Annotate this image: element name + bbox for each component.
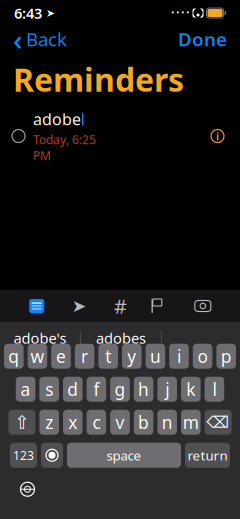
staticText: n <box>162 411 173 434</box>
staticText: u <box>150 345 161 368</box>
button[interactable]: ‹ <box>3 15 77 62</box>
staticText: Back <box>26 27 67 51</box>
button[interactable]: y <box>122 344 142 369</box>
staticText: w <box>30 345 44 368</box>
staticText: t <box>105 345 111 368</box>
staticText: m <box>183 411 199 434</box>
staticText: b <box>138 411 149 434</box>
button[interactable]: Key <box>10 443 37 468</box>
button[interactable]: space <box>67 443 181 468</box>
button[interactable]: adobes <box>81 322 161 354</box>
staticText: ⌫ <box>207 413 230 431</box>
staticText: i <box>216 129 219 143</box>
staticText: x <box>68 411 77 434</box>
button[interactable]: l <box>205 377 224 402</box>
button[interactable]: z <box>39 410 59 435</box>
staticText: ⇧ <box>14 412 30 433</box>
staticText: p <box>221 345 232 368</box>
button[interactable]: v <box>110 410 130 435</box>
button[interactable]: Key <box>8 410 35 435</box>
staticText: k <box>186 378 195 401</box>
button[interactable]: i <box>169 344 189 369</box>
button[interactable]: Suggestion <box>162 322 240 354</box>
staticText: 6:43 <box>14 3 42 23</box>
staticText: space <box>106 446 141 464</box>
button[interactable]: u <box>146 344 165 369</box>
staticText: adobe's <box>13 328 66 348</box>
button[interactable]: w <box>28 344 47 369</box>
staticText: adobes <box>96 328 146 348</box>
staticText: v <box>115 411 124 434</box>
button[interactable]: o <box>193 344 212 369</box>
staticText: r <box>81 345 88 368</box>
staticText: 123 <box>13 447 34 463</box>
staticText: h <box>138 378 149 401</box>
button[interactable]: Tag <box>110 289 131 323</box>
staticText: d <box>67 378 78 401</box>
button[interactable]: Camera <box>190 295 215 317</box>
staticText: ➤ <box>72 296 87 316</box>
staticText: f <box>93 378 99 401</box>
staticText: ➤ <box>42 7 55 19</box>
staticText: l <box>212 378 216 401</box>
button[interactable]: n <box>157 410 177 435</box>
staticText: • • • • <box>171 9 189 17</box>
staticText: adobe <box>33 108 81 130</box>
staticText: ‹ <box>13 19 23 58</box>
button[interactable]: p <box>216 344 236 369</box>
staticText: g <box>114 378 125 401</box>
button[interactable]: Key <box>41 443 63 468</box>
staticText: e <box>56 345 66 368</box>
button[interactable]: Key <box>205 410 232 435</box>
button[interactable]: Done <box>168 23 237 55</box>
staticText: s <box>45 378 53 401</box>
button[interactable]: q <box>4 344 24 369</box>
button[interactable]: a <box>16 377 35 402</box>
staticText: y <box>127 345 136 368</box>
button[interactable]: t <box>98 344 118 369</box>
button[interactable]: k <box>181 377 201 402</box>
staticText: Done <box>178 27 227 51</box>
staticText: j <box>165 378 169 401</box>
button[interactable]: Date <box>25 294 49 317</box>
button[interactable]: b <box>134 410 153 435</box>
button[interactable]: Details <box>207 125 228 147</box>
staticText: i <box>177 345 181 368</box>
button[interactable]: x <box>63 410 83 435</box>
staticText: Reminders <box>13 58 184 100</box>
staticText: o <box>198 345 208 368</box>
button[interactable]: s <box>39 377 59 402</box>
button[interactable]: r <box>75 344 94 369</box>
staticText: Today, 6:25 PM <box>33 132 96 164</box>
button[interactable]: j <box>157 377 177 402</box>
button[interactable]: e <box>51 344 71 369</box>
staticText: # <box>114 293 127 319</box>
button[interactable]: f <box>87 377 106 402</box>
button[interactable]: Next keyboard <box>16 478 39 501</box>
staticText: q <box>8 345 19 368</box>
button[interactable]: Flag <box>150 294 172 317</box>
button[interactable]: d <box>63 377 83 402</box>
button[interactable]: Location <box>67 294 91 317</box>
staticText: return <box>187 446 227 464</box>
staticText: a <box>21 378 31 401</box>
staticText: c <box>92 411 100 434</box>
button[interactable]: h <box>134 377 153 402</box>
staticText: z <box>45 411 53 434</box>
button[interactable]: m <box>181 410 201 435</box>
button[interactable]: Key <box>185 443 230 468</box>
button[interactable]: adobe's <box>0 322 80 354</box>
button[interactable]: g <box>110 377 130 402</box>
button[interactable]: c <box>87 410 106 435</box>
